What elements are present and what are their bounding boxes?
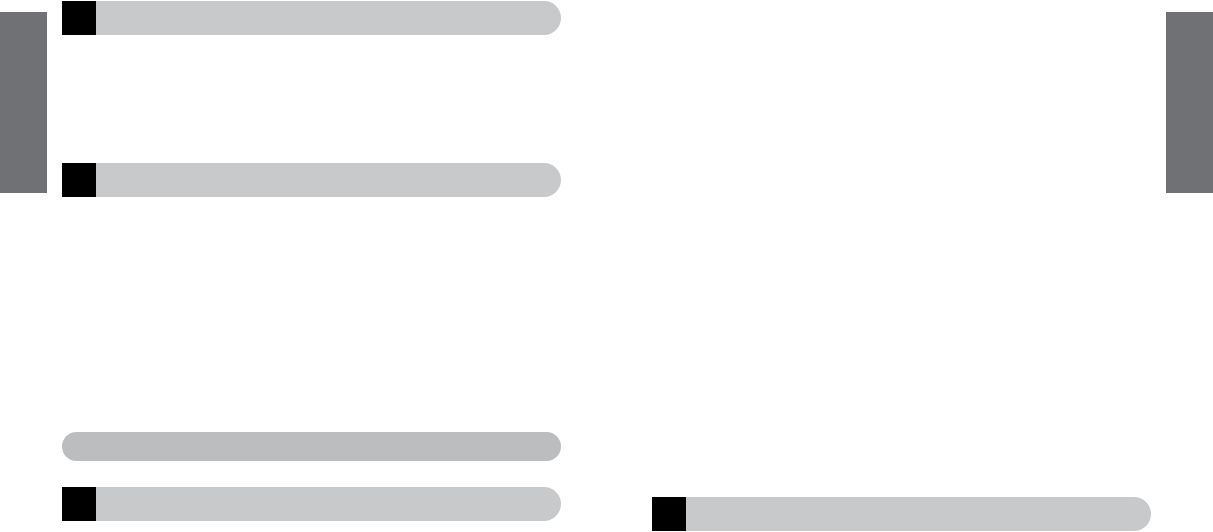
button[interactable]: Footer item [62, 487, 561, 521]
button[interactable]: Header [62, 1, 561, 35]
button[interactable]: Primary action [62, 432, 561, 461]
button[interactable]: Secondary item [652, 497, 1151, 531]
button[interactable]: List item [62, 163, 561, 197]
